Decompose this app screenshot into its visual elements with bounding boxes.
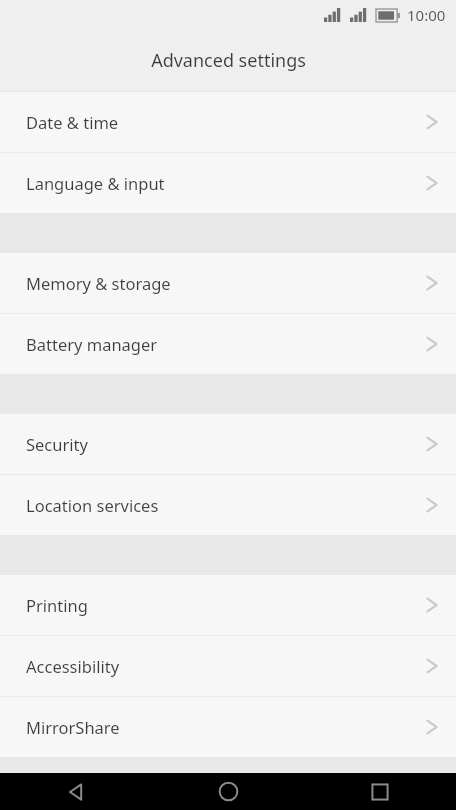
button[interactable]: Language & input: [0, 153, 456, 213]
button[interactable]: Location services: [0, 475, 456, 535]
staticText: Advanced settings: [151, 48, 306, 73]
staticText: MirrorShare: [26, 716, 120, 738]
staticText: Location services: [26, 494, 159, 516]
button[interactable]: Recents: [304, 773, 456, 810]
staticText: Battery manager: [26, 333, 158, 355]
button[interactable]: Printing: [0, 575, 456, 635]
button[interactable]: Security: [0, 414, 456, 474]
button[interactable]: Date & time: [0, 92, 456, 152]
staticText: Memory & storage: [26, 272, 171, 294]
button[interactable]: Battery manager: [0, 314, 456, 374]
button[interactable]: Home: [152, 773, 304, 810]
staticText: Date & time: [26, 111, 119, 133]
staticText: 10:00: [407, 5, 446, 25]
button[interactable]: Accessibility: [0, 636, 456, 696]
staticText: Accessibility: [26, 655, 120, 677]
staticText: Security: [26, 433, 88, 455]
staticText: Language & input: [26, 172, 165, 194]
button[interactable]: Memory & storage: [0, 253, 456, 313]
staticText: Printing: [26, 594, 88, 616]
button[interactable]: Back: [0, 773, 152, 810]
button[interactable]: MirrorShare: [0, 697, 456, 757]
